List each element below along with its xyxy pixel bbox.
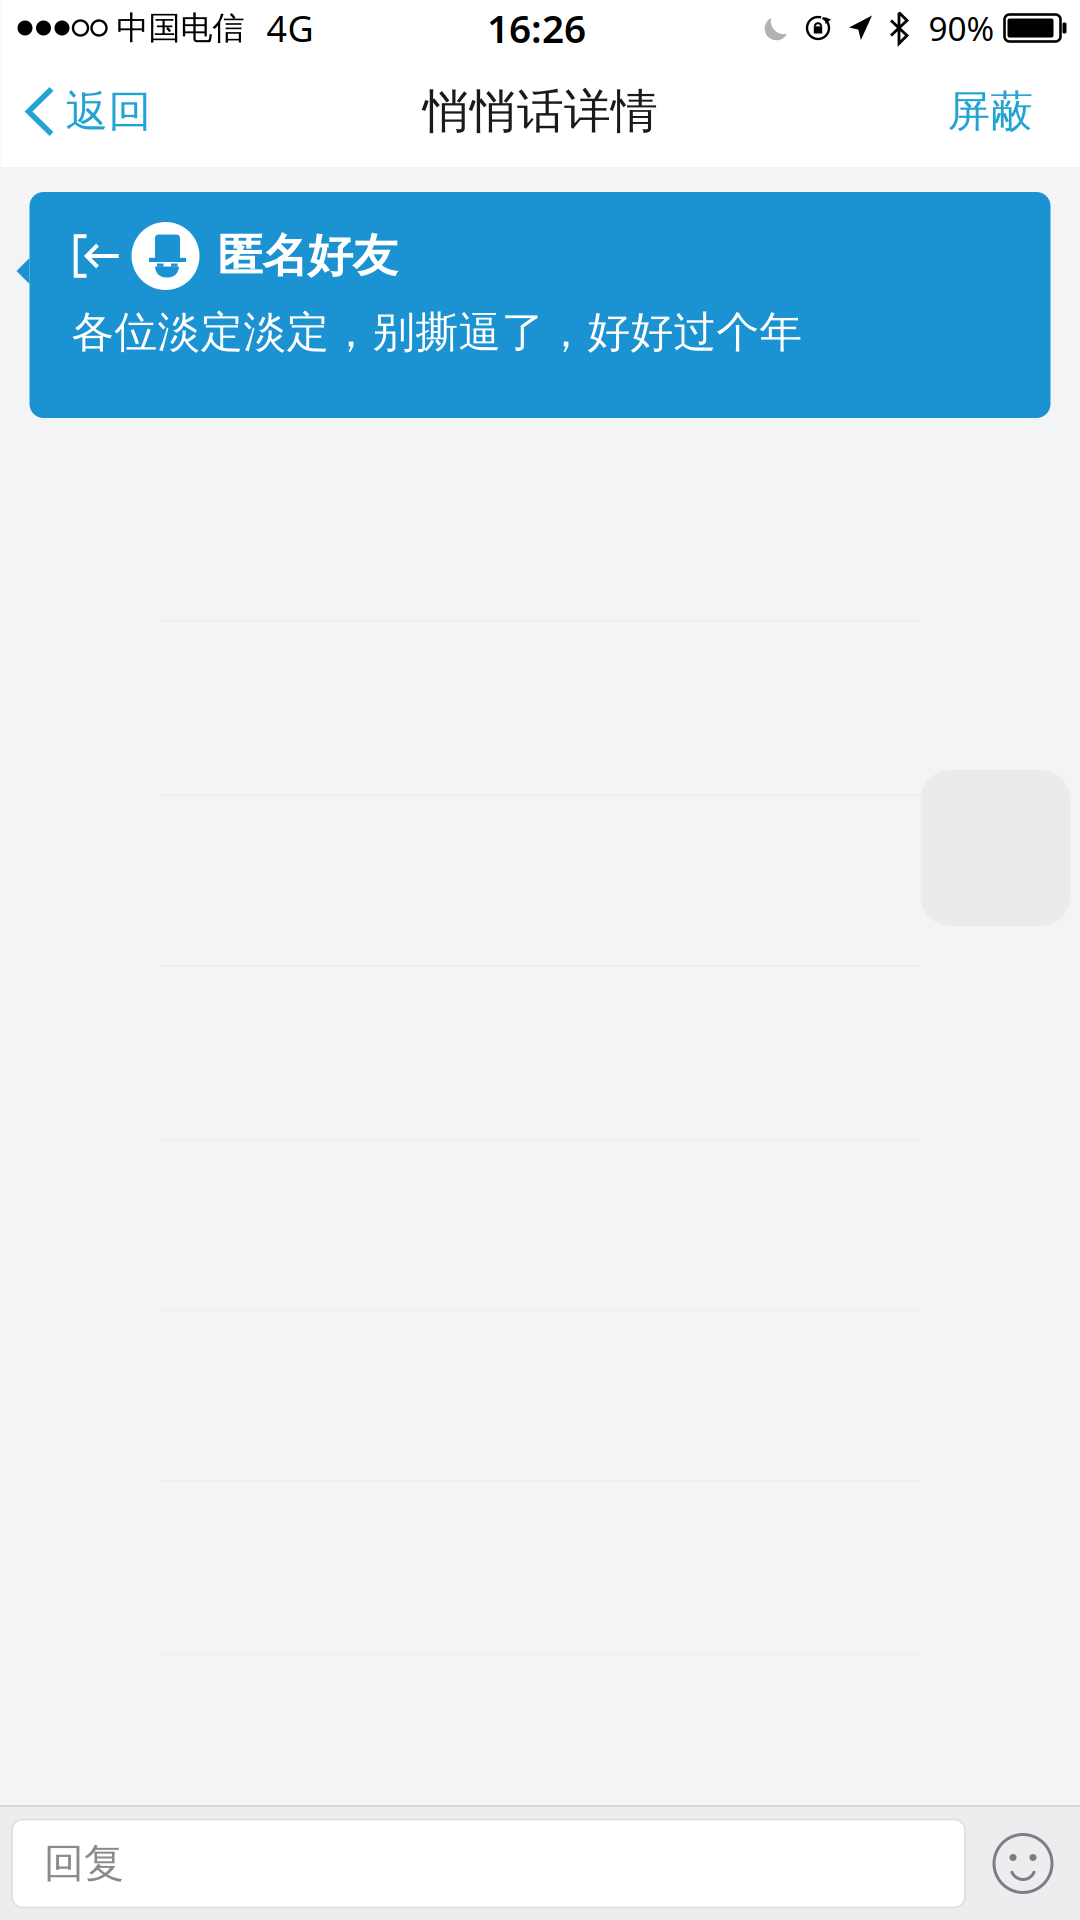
staticText: 16:26 [487, 2, 586, 54]
staticText: 中国电信 [116, 8, 244, 48]
button[interactable]: 回复 [12, 1819, 965, 1907]
staticText: 各位淡定淡定，别撕逼了，好好过个年 [71, 306, 802, 358]
staticText: 回复 [44, 1839, 124, 1888]
staticText: 悄悄话详情 [423, 83, 658, 140]
staticText: 90% [928, 6, 994, 50]
button[interactable]: 屏蔽 [921, 56, 1080, 167]
staticText: 屏蔽 [947, 85, 1033, 138]
button[interactable]: 返回 [0, 56, 173, 167]
staticText: 匿名好友 [217, 228, 397, 284]
staticText: 返回 [65, 85, 151, 138]
staticText: 4G [266, 4, 313, 52]
button[interactable]: Emoji [973, 1807, 1073, 1920]
